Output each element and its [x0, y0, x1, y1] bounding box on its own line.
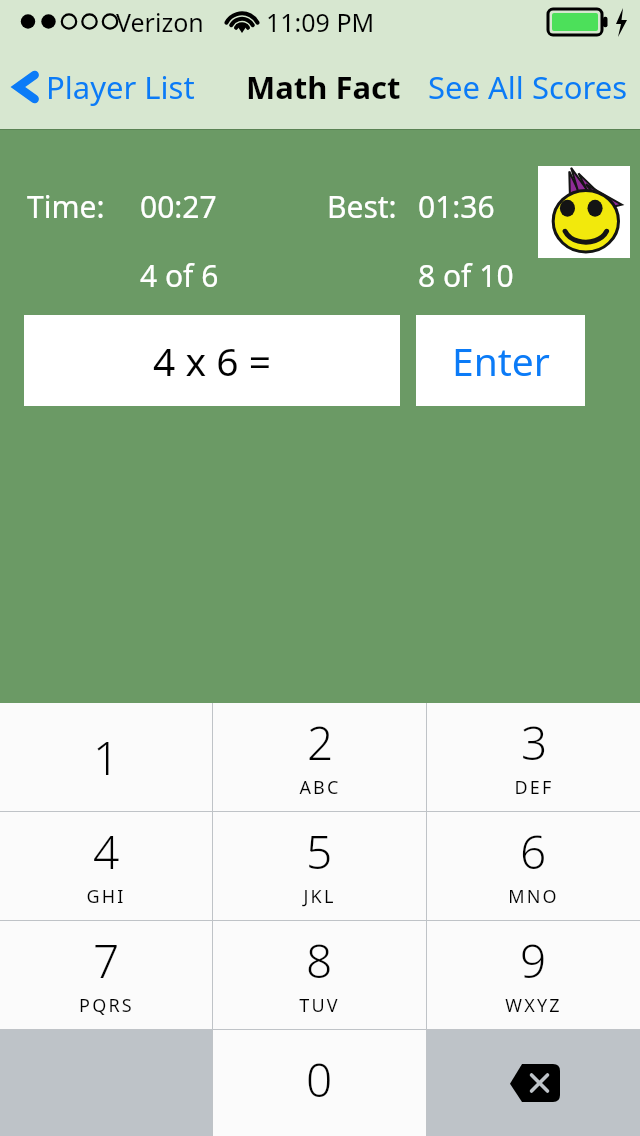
button[interactable]: 5 [213, 812, 426, 920]
staticText: 11:09 PM [266, 5, 375, 39]
staticText: 1 [93, 726, 120, 789]
staticText: 9 [520, 929, 547, 992]
staticText: 4 of 6 [140, 255, 219, 296]
staticText: Math Fact [246, 66, 401, 108]
button[interactable]: 7 [0, 921, 212, 1029]
button[interactable]: 2 [213, 703, 426, 811]
staticText: 7 [93, 929, 120, 992]
staticText: JKL [303, 884, 336, 909]
staticText: Time: [27, 186, 105, 227]
button[interactable]: 8 [213, 921, 426, 1029]
staticText: 2 [307, 711, 334, 774]
staticText: 8 of 10 [418, 255, 514, 296]
staticText: Player List [46, 66, 195, 108]
staticText: 0 [306, 1048, 333, 1111]
button[interactable]: 1 [0, 703, 212, 811]
staticText: 8 [306, 929, 333, 992]
staticText: 00:27 [140, 186, 217, 227]
button[interactable]: 4 [0, 812, 212, 920]
staticText: See All Scores [428, 66, 628, 108]
button[interactable]: Delete [427, 1030, 640, 1136]
button[interactable]: Player avatar [538, 166, 630, 258]
button[interactable]: 9 [427, 921, 640, 1029]
staticText: PQRS [79, 993, 134, 1018]
button[interactable]: Player List [0, 60, 201, 114]
staticText: 6 [520, 820, 547, 883]
staticText: 3 [521, 711, 548, 774]
staticText: Verizon [116, 5, 204, 39]
button[interactable]: 6 [427, 812, 640, 920]
staticText: MNO [508, 884, 559, 909]
staticText: Enter [452, 334, 550, 387]
staticText: 4 [93, 820, 120, 883]
button[interactable]: See All Scores [416, 58, 640, 116]
staticText: DEF [514, 775, 554, 800]
staticText: WXYZ [505, 993, 562, 1018]
staticText: GHI [86, 884, 126, 909]
staticText: Best: [327, 186, 397, 227]
button[interactable]: 4 x 6 = [24, 315, 400, 406]
button[interactable]: Enter [416, 315, 585, 406]
staticText: TUV [299, 993, 340, 1018]
staticText: 4 x 6 = [153, 334, 271, 387]
staticText: 5 [306, 820, 333, 883]
staticText: 01:36 [418, 186, 495, 227]
button[interactable]: 0 [213, 1030, 426, 1136]
button[interactable]: 3 [427, 703, 640, 811]
staticText: ABC [299, 775, 341, 800]
